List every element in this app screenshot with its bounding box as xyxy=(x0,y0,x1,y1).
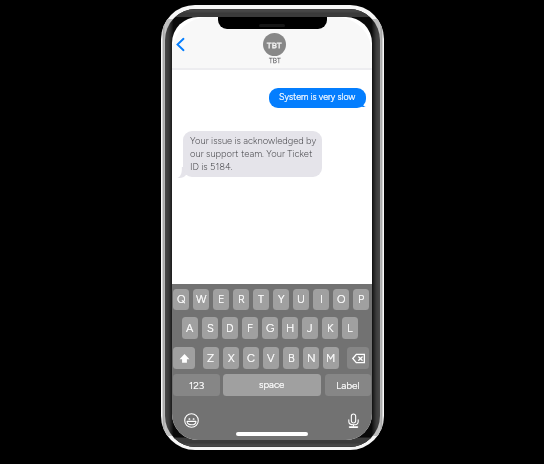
staticText: U xyxy=(297,293,305,306)
button[interactable]: E xyxy=(213,289,229,310)
button[interactable]: System is very slow xyxy=(269,88,366,108)
staticText: V xyxy=(267,352,275,365)
button[interactable]: J xyxy=(302,317,318,339)
button[interactable]: Backspace xyxy=(347,347,369,369)
button[interactable]: TBT xyxy=(263,33,286,65)
button[interactable]: G xyxy=(262,317,278,339)
button[interactable]: 123 xyxy=(173,374,220,396)
staticText: M xyxy=(326,352,336,365)
staticText: O xyxy=(337,293,346,306)
staticText: N xyxy=(307,352,316,365)
button[interactable]: H xyxy=(282,317,298,339)
staticText: J xyxy=(307,322,313,335)
button[interactable]: Emoji xyxy=(182,411,200,429)
button[interactable]: Q xyxy=(173,289,189,310)
staticText: I xyxy=(320,293,323,306)
button[interactable]: T xyxy=(253,289,269,310)
staticText: System is very slow xyxy=(279,92,356,103)
staticText: F xyxy=(247,322,253,335)
staticText: 123 xyxy=(189,379,205,391)
staticText: Z xyxy=(207,352,215,365)
button[interactable]: S xyxy=(202,317,218,339)
button[interactable]: K xyxy=(322,317,338,339)
staticText: TBT xyxy=(267,40,282,50)
button[interactable]: N xyxy=(303,347,319,369)
staticText: Y xyxy=(278,293,285,306)
button[interactable]: L xyxy=(342,317,358,339)
button[interactable]: U xyxy=(293,289,309,310)
button[interactable]: F xyxy=(242,317,258,339)
button[interactable]: C xyxy=(243,347,259,369)
staticText: W xyxy=(196,293,207,306)
button[interactable]: V xyxy=(263,347,279,369)
button[interactable]: X xyxy=(223,347,239,369)
staticText: E xyxy=(218,293,225,306)
staticText: B xyxy=(288,352,295,365)
button[interactable]: O xyxy=(333,289,349,310)
button[interactable]: B xyxy=(283,347,299,369)
button[interactable]: D xyxy=(222,317,238,339)
button[interactable]: Voice input xyxy=(344,411,362,429)
button[interactable]: I xyxy=(313,289,329,310)
staticText: D xyxy=(226,322,234,335)
staticText: space xyxy=(259,379,285,391)
button[interactable]: Z xyxy=(203,347,219,369)
button[interactable]: Y xyxy=(273,289,289,310)
staticText: T xyxy=(258,293,264,306)
staticText: P xyxy=(358,293,365,306)
button[interactable]: W xyxy=(193,289,209,310)
staticText: TBT xyxy=(269,57,281,65)
button[interactable]: Back xyxy=(172,33,191,55)
button[interactable]: Label xyxy=(325,374,371,396)
staticText: Q xyxy=(177,293,186,306)
button[interactable]: Your issue is acknowledged by our suppor… xyxy=(183,131,322,177)
staticText: K xyxy=(327,322,334,335)
staticText: X xyxy=(228,352,235,365)
staticText: Label xyxy=(336,379,360,391)
staticText: A xyxy=(186,322,194,335)
staticText: Your issue is acknowledged by our suppor… xyxy=(190,135,317,172)
staticText: C xyxy=(247,352,255,365)
button[interactable]: Shift xyxy=(173,347,195,369)
button[interactable]: R xyxy=(233,289,249,310)
button[interactable]: P xyxy=(353,289,369,310)
staticText: S xyxy=(207,322,214,335)
button[interactable]: A xyxy=(182,317,198,339)
staticText: L xyxy=(347,322,353,335)
staticText: H xyxy=(286,322,295,335)
button[interactable]: space xyxy=(223,374,321,396)
staticText: G xyxy=(266,322,275,335)
button[interactable]: M xyxy=(323,347,339,369)
staticText: R xyxy=(238,293,245,306)
